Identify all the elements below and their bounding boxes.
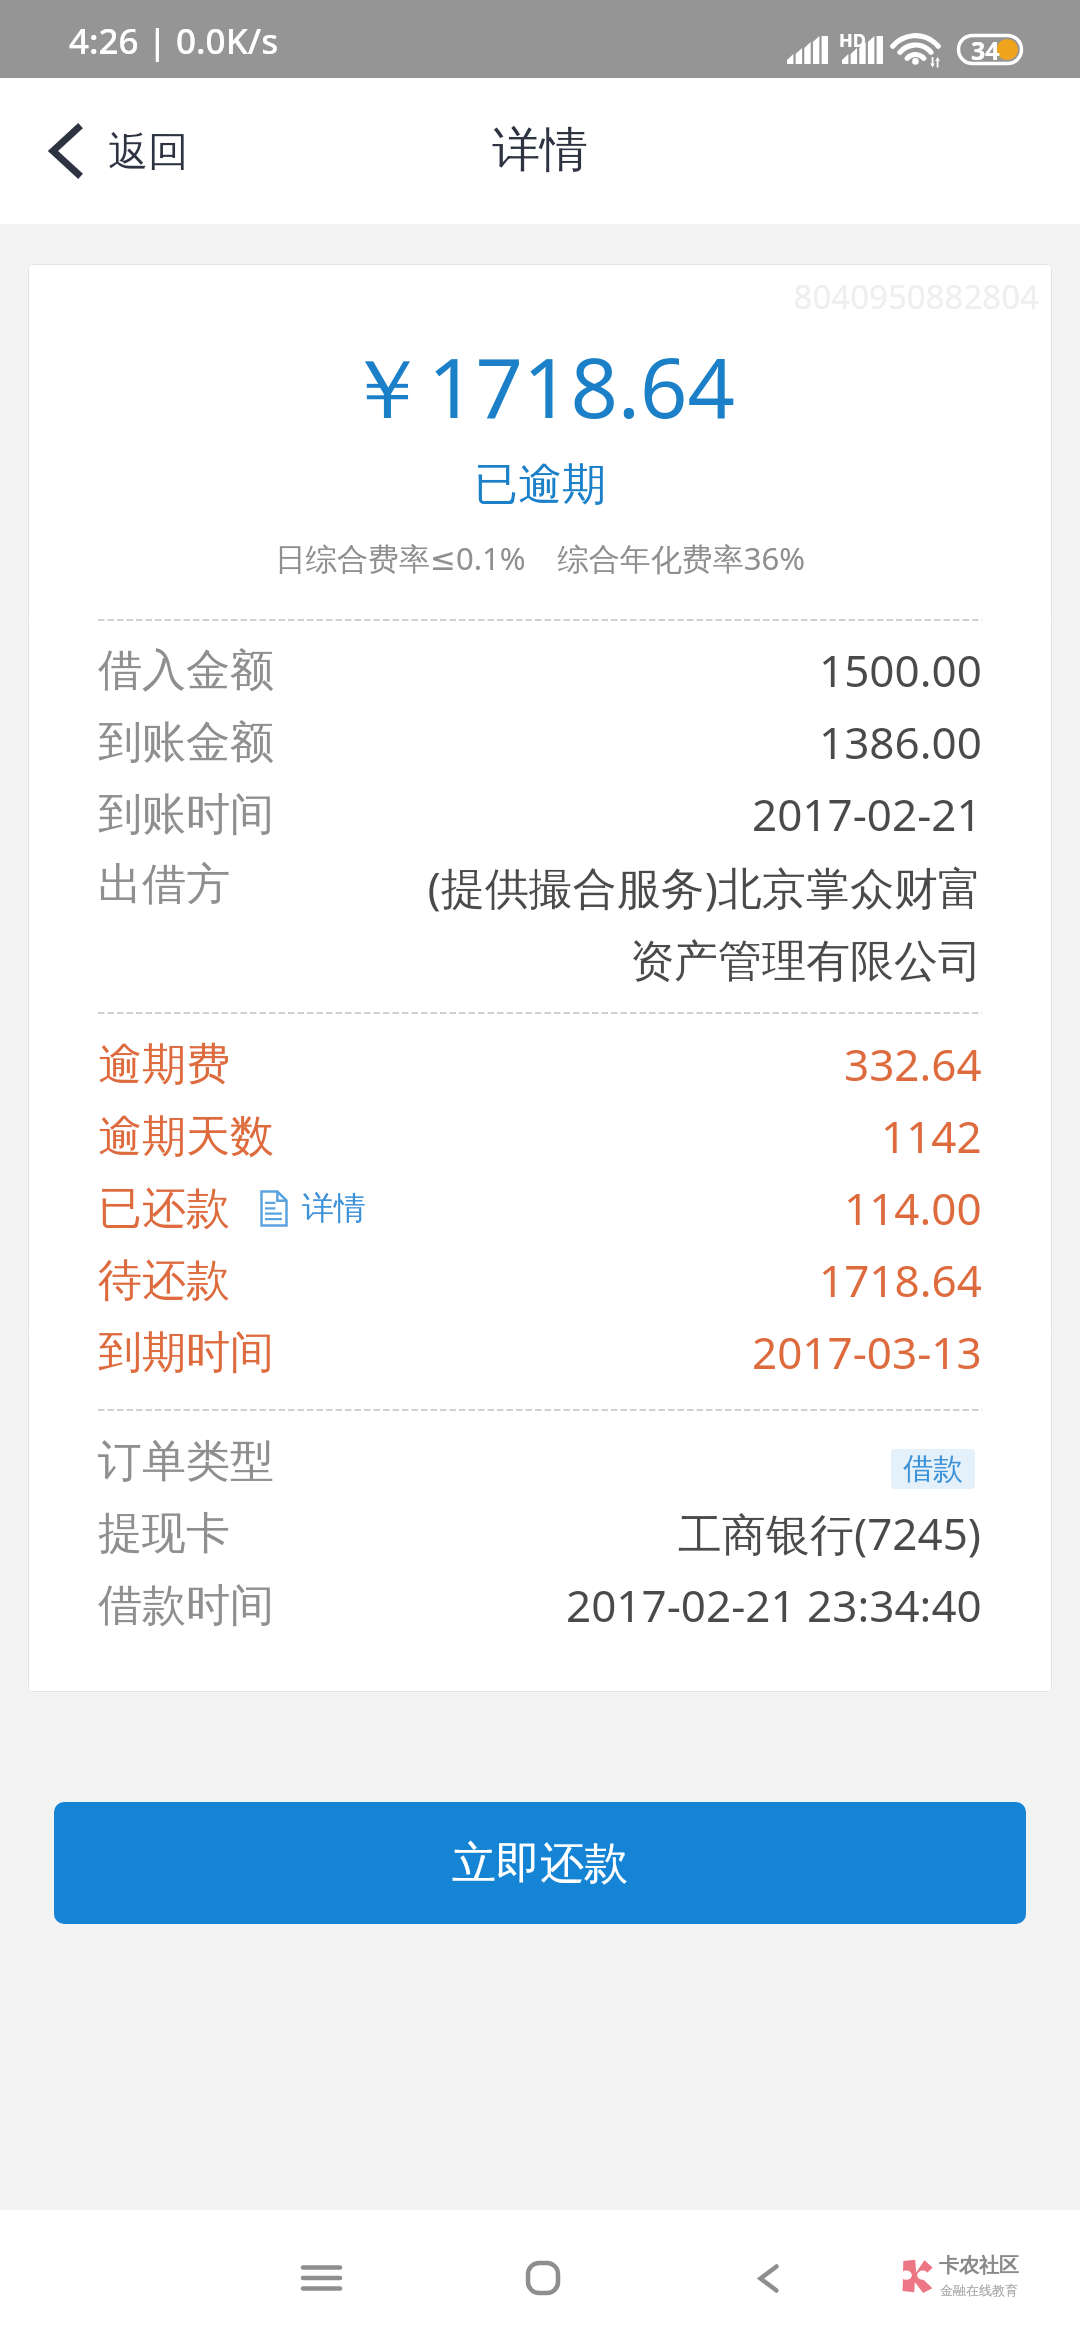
staticText: 工商银行(7245) xyxy=(678,1503,982,1563)
staticText: 332.64 xyxy=(844,1034,982,1094)
staticText: 立即还款 xyxy=(452,1836,628,1891)
staticText: HD xyxy=(839,28,866,53)
staticText: 逾期天数 xyxy=(98,1109,274,1164)
staticText: 1142 xyxy=(881,1106,982,1166)
staticText: (提供撮合服务)北京掌众财富 资产管理有限公司 xyxy=(402,857,982,989)
staticText: 提现卡 xyxy=(98,1506,230,1561)
staticText: 日综合费率≤0.1% 综合年化费率36% xyxy=(28,537,1052,579)
staticText: 借款时间 xyxy=(98,1578,274,1633)
staticText: ￥1718.64 xyxy=(28,329,1052,442)
button[interactable]: Home xyxy=(495,2230,591,2326)
staticText: 已逾期 xyxy=(28,457,1052,512)
staticText: 借款 xyxy=(903,1450,963,1488)
button[interactable]: Back xyxy=(720,2230,816,2326)
staticText: 2017-02-21 23:34:40 xyxy=(566,1575,982,1635)
staticText: 返回 xyxy=(108,126,188,176)
button[interactable]: 立即还款 xyxy=(54,1802,1026,1924)
staticText: 1500.00 xyxy=(819,640,982,700)
staticText: 到账时间 xyxy=(98,787,274,842)
button[interactable]: 详情 xyxy=(256,1182,370,1234)
staticText: 1718.64 xyxy=(819,1250,982,1310)
staticText: 2017-02-21 xyxy=(752,784,982,844)
staticText: 金融在线教育 xyxy=(940,2282,1018,2298)
staticText: 到期时间 xyxy=(98,1325,274,1380)
staticText: 已还款 xyxy=(98,1181,230,1236)
staticText: 34 xyxy=(971,33,1000,64)
staticText: 4:26 | 0.0K/s xyxy=(69,17,279,65)
staticText: 1386.00 xyxy=(819,712,982,772)
staticText: 到账金额 xyxy=(98,715,274,770)
staticText: 订单类型 xyxy=(98,1434,274,1489)
staticText: 详情 xyxy=(302,1188,366,1228)
button[interactable]: 返回 xyxy=(0,103,214,199)
staticText: 出借方 xyxy=(98,857,230,912)
staticText: 2017-03-13 xyxy=(752,1322,982,1382)
staticText: 待还款 xyxy=(98,1253,230,1308)
staticText: 逾期费 xyxy=(98,1037,230,1092)
staticText: 借入金额 xyxy=(98,643,274,698)
staticText: 详情 xyxy=(492,120,588,180)
button[interactable]: Recent apps xyxy=(273,2230,369,2326)
staticText: 8040950882804 xyxy=(28,274,1039,319)
staticText: 卡农社区 xyxy=(939,2253,1019,2278)
staticText: 114.00 xyxy=(844,1178,982,1238)
